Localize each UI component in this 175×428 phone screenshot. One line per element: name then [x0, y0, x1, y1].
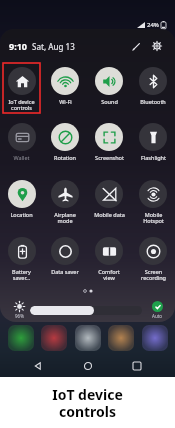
staticText: Rotation	[54, 154, 76, 161]
button[interactable]: Settings	[148, 37, 166, 55]
button[interactable]: Comfort view	[87, 232, 131, 289]
button[interactable]: Wallet	[0, 118, 43, 175]
staticText: Flashlight	[141, 154, 166, 161]
button[interactable]: IoT device controls	[0, 62, 43, 118]
staticText: Battery saver...	[12, 268, 31, 282]
staticText: Data saver	[51, 268, 79, 275]
button[interactable]: Sound	[87, 62, 131, 118]
button[interactable]: Mobile data	[87, 175, 131, 232]
button[interactable]: Mobile Hotspot	[131, 175, 175, 232]
button[interactable]: Home	[77, 355, 99, 377]
button[interactable]: Flashlight	[131, 118, 175, 175]
staticText: Location	[10, 211, 33, 218]
button[interactable]: Wi-Fi	[43, 62, 87, 118]
button[interactable]: Screen recording	[131, 232, 175, 289]
button[interactable]: Back	[27, 355, 49, 377]
staticText: Mobile data	[94, 211, 125, 218]
staticText: Screenshot	[95, 154, 124, 161]
staticText: 24%	[147, 21, 159, 29]
button[interactable]: Location	[0, 175, 43, 232]
staticText: Mobile Hotspot	[143, 211, 164, 225]
button[interactable]: Edit	[127, 37, 145, 55]
button[interactable]	[30, 306, 142, 315]
staticText: Comfort view	[98, 268, 120, 282]
staticText: 96%	[15, 313, 24, 319]
staticText: 9:10	[9, 40, 27, 52]
staticText: Screen recording	[141, 268, 166, 282]
staticText: Airplane mode	[54, 211, 76, 225]
button[interactable]: Auto brightness	[147, 301, 167, 319]
button[interactable]: Recents	[126, 355, 148, 377]
staticText: Wi-Fi	[59, 98, 72, 105]
staticText: Bluetooth	[140, 98, 166, 105]
button[interactable]: Airplane mode	[43, 175, 87, 232]
button[interactable]: Bluetooth	[131, 62, 175, 118]
button[interactable]: Data saver	[43, 232, 87, 289]
staticText: IoT device controls	[8, 98, 35, 112]
button[interactable]: Screenshot	[87, 118, 131, 175]
button[interactable]: Rotation	[43, 118, 87, 175]
staticText: Sound	[101, 98, 118, 105]
staticText: IoT device controls	[52, 385, 123, 421]
staticText: Auto	[152, 313, 163, 319]
staticText: Wallet	[13, 154, 30, 161]
staticText: Sat, Aug 13	[32, 41, 75, 52]
button[interactable]: Battery saver...	[0, 232, 43, 289]
